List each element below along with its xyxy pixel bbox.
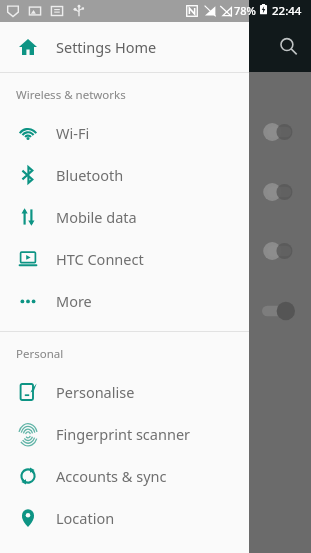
- staticText: Personalise: [56, 382, 135, 402]
- button[interactable]: Search: [272, 30, 304, 62]
- button[interactable]: Toggle: [262, 122, 296, 142]
- staticText: HTC Connect: [56, 249, 144, 269]
- staticText: 22:44: [272, 3, 302, 19]
- button[interactable]: Personalise: [0, 371, 249, 413]
- staticText: Wi-Fi: [56, 123, 90, 143]
- staticText: Settings Home: [56, 37, 157, 57]
- button[interactable]: Accounts & sync: [0, 455, 249, 497]
- button[interactable]: Toggle: [262, 241, 296, 261]
- button[interactable]: HTC Connect: [0, 238, 249, 280]
- staticText: Fingerprint scanner: [56, 424, 191, 444]
- staticText: Mobile data: [56, 207, 137, 227]
- button[interactable]: Settings Home: [0, 22, 249, 72]
- staticText: Accounts & sync: [56, 466, 167, 486]
- staticText: More: [56, 291, 92, 311]
- staticText: Wireless & networks: [16, 87, 126, 103]
- button[interactable]: Wi-Fi: [0, 112, 249, 154]
- button[interactable]: Toggle: [262, 301, 296, 321]
- button[interactable]: Bluetooth: [0, 154, 249, 196]
- button[interactable]: Fingerprint scanner: [0, 413, 249, 455]
- button[interactable]: More: [0, 280, 249, 322]
- button[interactable]: Location: [0, 497, 249, 539]
- staticText: 78%: [234, 3, 256, 18]
- staticText: Location: [56, 508, 115, 528]
- button[interactable]: Mobile data: [0, 196, 249, 238]
- staticText: Personal: [16, 346, 64, 362]
- button[interactable]: Toggle: [262, 182, 296, 202]
- staticText: Bluetooth: [56, 165, 124, 185]
